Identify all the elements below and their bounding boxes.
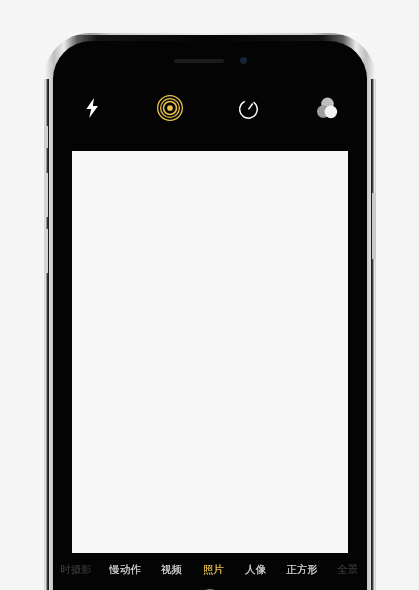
- button[interactable]: Filters: [288, 86, 367, 130]
- button[interactable]: 正方形: [276, 557, 328, 581]
- staticText: 照片: [203, 563, 224, 576]
- staticText: 人像: [245, 563, 266, 576]
- staticText: 时摄影: [60, 563, 92, 576]
- button[interactable]: 视频: [150, 557, 192, 581]
- button[interactable]: 全景: [328, 557, 367, 581]
- staticText: 慢动作: [109, 563, 141, 576]
- button[interactable]: 时摄影: [53, 557, 99, 581]
- staticText: 全景: [337, 563, 358, 576]
- button[interactable]: 人像: [234, 557, 276, 581]
- staticText: 正方形: [286, 563, 318, 576]
- button[interactable]: Flash: [53, 86, 131, 130]
- button[interactable]: 慢动作: [99, 557, 150, 581]
- staticText: 视频: [161, 563, 182, 576]
- button[interactable]: 照片: [192, 557, 234, 581]
- button[interactable]: Timer: [209, 86, 288, 130]
- button[interactable]: Live Photo: [131, 86, 209, 130]
